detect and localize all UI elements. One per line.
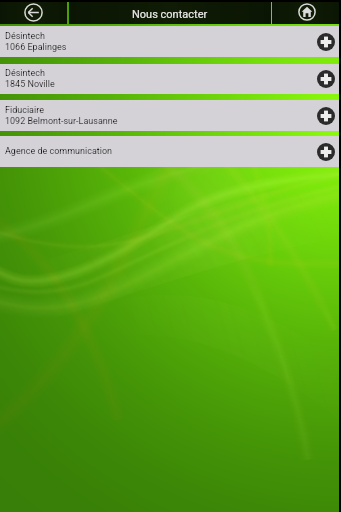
button[interactable]: Home (272, 0, 341, 24)
button[interactable]: Agence de communication (0, 136, 341, 167)
staticText: 1845 Noville (5, 79, 55, 90)
button[interactable]: Désintech (0, 64, 341, 94)
staticText: 1092 Belmont-sur-Lausanne (5, 116, 118, 127)
staticText: Désintech (5, 68, 45, 79)
button[interactable]: Nous contacter (69, 0, 271, 24)
staticText: Nous contacter (132, 8, 208, 21)
staticText: Agence de communication (5, 146, 113, 157)
button[interactable]: Back (0, 0, 67, 24)
staticText: Fiduciaire (5, 105, 44, 116)
button[interactable]: Fiduciaire (0, 100, 341, 131)
staticText: 1066 Epalinges (5, 42, 67, 53)
staticText: Désintech (5, 31, 45, 42)
button[interactable]: Désintech (0, 26, 341, 57)
